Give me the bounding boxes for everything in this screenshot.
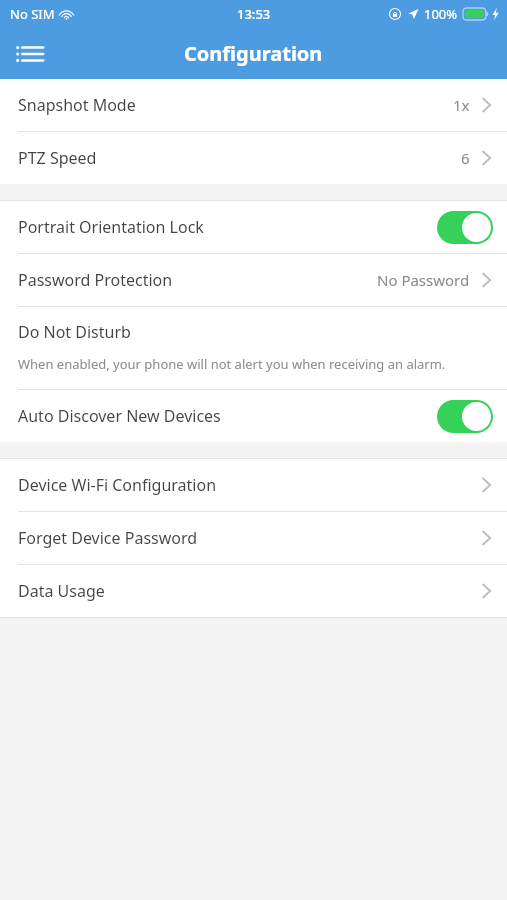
button[interactable]: PTZ Speed — [0, 132, 507, 184]
staticText: 1x — [453, 95, 470, 115]
button[interactable]: Data Usage — [0, 565, 507, 617]
button[interactable]: Toggle on — [437, 400, 493, 433]
staticText: 100% — [424, 5, 458, 23]
staticText: Portrait Orientation Lock — [18, 216, 204, 238]
staticText: 6 — [461, 148, 470, 168]
button[interactable]: Do Not Disturb — [0, 307, 507, 389]
staticText: No Password — [377, 270, 470, 290]
staticText: No SIM — [10, 5, 55, 23]
staticText: Configuration — [184, 40, 323, 67]
button[interactable]: Menu — [8, 32, 52, 76]
staticText: PTZ Speed — [18, 147, 97, 169]
staticText: Auto Discover New Devices — [18, 405, 221, 427]
button[interactable]: Forget Device Password — [0, 512, 507, 564]
button[interactable]: Snapshot Mode — [0, 79, 507, 131]
button[interactable]: Auto Discover New Devices — [0, 390, 507, 442]
staticText: Device Wi-Fi Configuration — [18, 474, 217, 496]
button[interactable]: Password Protection — [0, 254, 507, 306]
button[interactable]: Toggle on — [437, 211, 493, 244]
staticText: When enabled, your phone will not alert … — [18, 355, 446, 373]
staticText: Password Protection — [18, 269, 173, 291]
button[interactable]: Device Wi-Fi Configuration — [0, 459, 507, 511]
staticText: Data Usage — [18, 580, 105, 602]
staticText: 13:53 — [237, 5, 271, 23]
staticText: Do Not Disturb — [18, 321, 131, 343]
staticText: Snapshot Mode — [18, 94, 136, 116]
button[interactable]: Portrait Orientation Lock — [0, 201, 507, 253]
staticText: Forget Device Password — [18, 527, 198, 549]
